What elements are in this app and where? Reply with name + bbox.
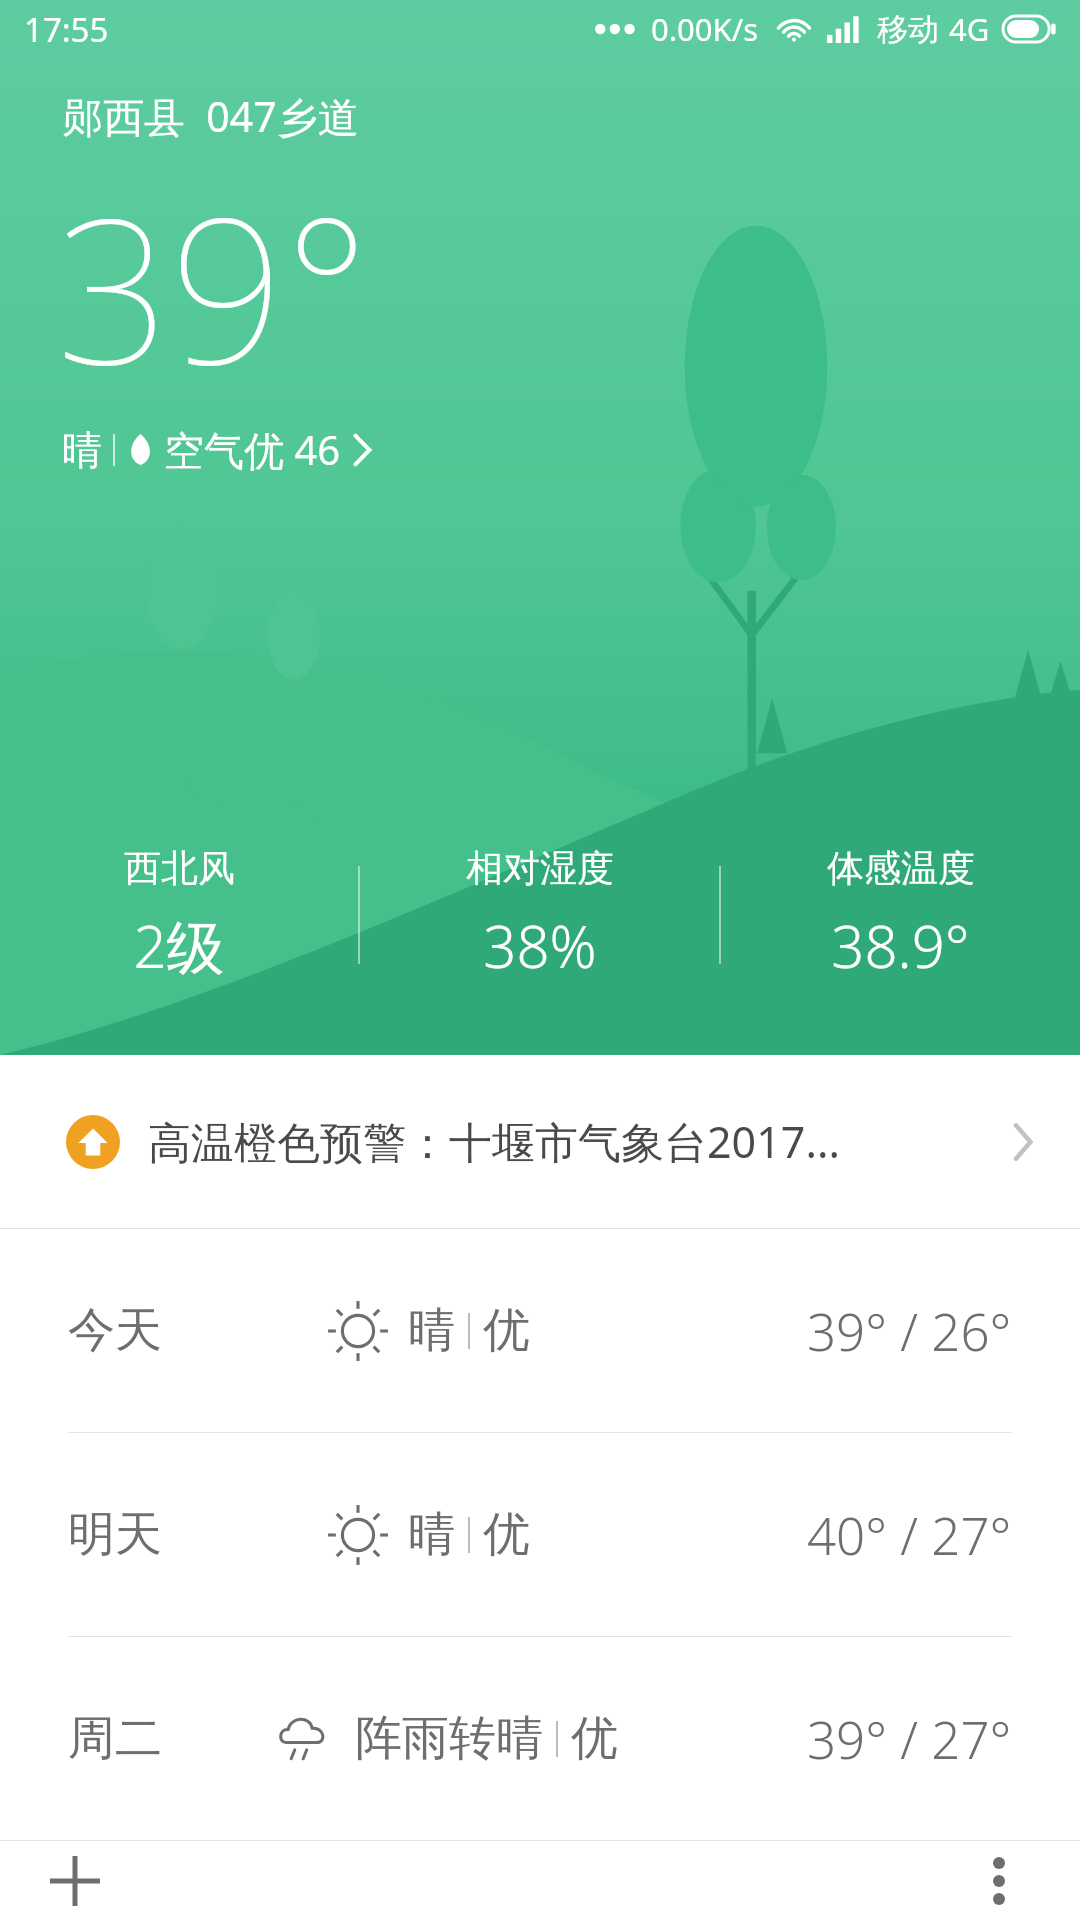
staticText: 晴: [62, 425, 102, 475]
staticText: 0.00K/s: [651, 8, 759, 50]
staticText: 今天: [68, 1301, 162, 1360]
staticText: 4G: [949, 8, 990, 50]
staticText: 2级: [133, 906, 225, 985]
button[interactable]: More options: [954, 1841, 1044, 1920]
staticText: 17:55: [24, 7, 109, 52]
button[interactable]: 周二: [0, 1637, 1080, 1840]
staticText: 39° / 27°: [807, 1704, 1012, 1773]
staticText: 周二: [68, 1709, 162, 1768]
staticText: 相对湿度: [466, 845, 614, 892]
staticText: 优: [483, 1301, 530, 1360]
staticText: 优: [571, 1709, 618, 1768]
button[interactable]: 高温橙色预警：十堰市气象台2017...: [0, 1055, 1080, 1228]
staticText: 西北风: [124, 845, 235, 892]
staticText: 晴: [408, 1301, 455, 1360]
button[interactable]: Add city: [30, 1841, 120, 1920]
button[interactable]: 明天: [0, 1433, 1080, 1636]
staticText: 40° / 27°: [807, 1500, 1012, 1569]
staticText: 体感温度: [827, 845, 975, 892]
button[interactable]: 晴: [62, 422, 373, 477]
staticText: 晴: [408, 1505, 455, 1564]
staticText: 38%: [483, 906, 597, 985]
staticText: 阵雨转晴: [355, 1709, 543, 1768]
staticText: 移动: [877, 10, 939, 49]
staticText: 39° / 26°: [807, 1296, 1012, 1365]
button[interactable]: 今天: [0, 1229, 1080, 1432]
staticText: 明天: [68, 1505, 162, 1564]
staticText: 空气优 46: [164, 422, 341, 477]
staticText: 38.9°: [831, 906, 970, 985]
staticText: 高温橙色预警：十堰市气象台2017...: [148, 1112, 840, 1171]
staticText: 优: [483, 1505, 530, 1564]
staticText: 郧西县 047乡道: [62, 88, 359, 144]
staticText: 39°: [56, 150, 370, 422]
